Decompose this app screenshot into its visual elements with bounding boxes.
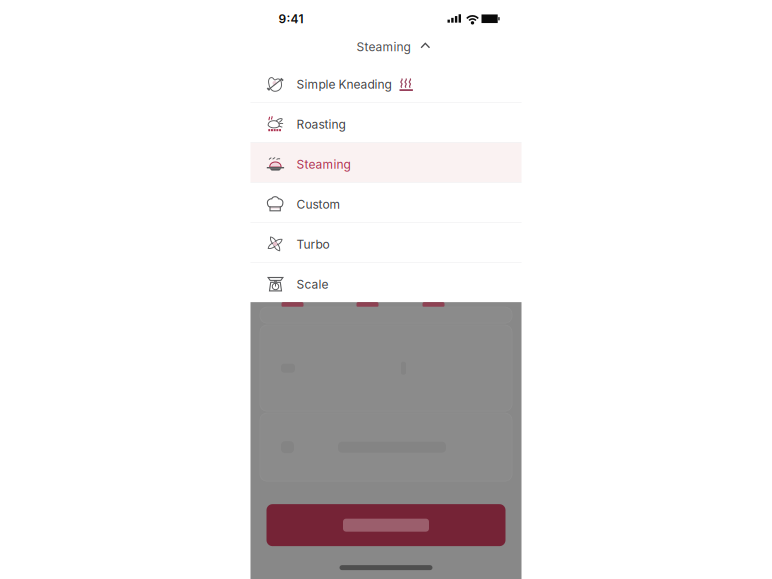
staticText: Steaming — [296, 157, 350, 172]
staticText: Scale — [296, 277, 328, 292]
staticText: 9:41 — [278, 12, 303, 26]
button[interactable]: Custom — [250, 183, 521, 222]
staticText: Simple Kneading — [296, 77, 391, 92]
button[interactable]: Steaming — [250, 31, 521, 63]
button[interactable]: Turbo — [250, 223, 521, 262]
staticText: Turbo — [296, 237, 329, 252]
button[interactable]: Scale — [250, 263, 521, 302]
button[interactable]: Simple Kneading — [250, 63, 521, 102]
staticText: Roasting — [296, 117, 345, 132]
staticText: Custom — [296, 197, 340, 212]
button[interactable]: Steaming — [250, 143, 521, 182]
staticText: Steaming — [356, 40, 410, 54]
button[interactable]: Roasting — [250, 103, 521, 142]
button[interactable] — [266, 504, 505, 546]
